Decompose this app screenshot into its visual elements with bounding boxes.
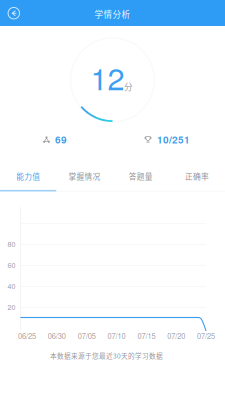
staticText: 学情分析 [94,8,130,20]
staticText: 能力值 [16,170,40,182]
staticText: 20 [7,302,15,312]
staticText: 60 [7,260,15,270]
button[interactable]: 答题量 [112,169,169,191]
staticText: 正确率 [185,170,209,182]
staticText: 答题量 [129,170,153,182]
button[interactable]: 正确率 [169,169,225,191]
button[interactable]: 能力值 [0,169,56,191]
button[interactable]: 掌握情况 [56,169,112,191]
staticText: 12 [90,55,124,99]
staticText: 分 [124,80,133,93]
staticText: 40 [7,281,15,291]
staticText: 07/25 [197,330,215,341]
staticText: 07/20 [167,330,185,341]
staticText: 07/05 [78,330,96,341]
staticText: 80 [7,239,15,249]
staticText: 本数据来源于您最近30天的学习数据 [50,351,163,360]
staticText: 69 [55,132,67,147]
staticText: 07/10 [108,330,126,341]
staticText: 06/25 [18,330,36,341]
button[interactable]: Back [1,0,27,26]
staticText: 06/30 [48,330,66,341]
staticText: 掌握情况 [68,170,100,182]
staticText: 07/15 [137,330,155,341]
staticText: 10/251 [157,132,190,147]
